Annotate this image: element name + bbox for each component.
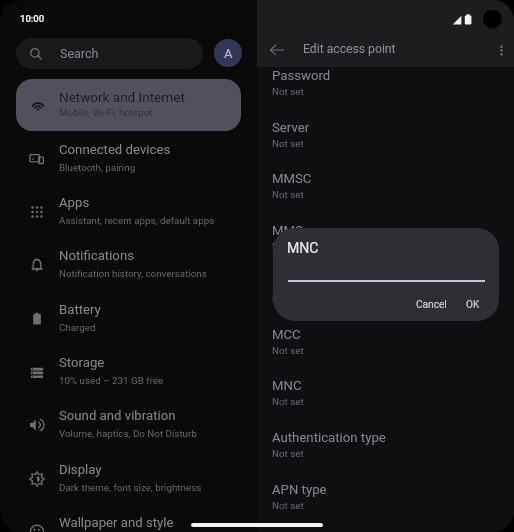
staticText: Not set (272, 345, 304, 356)
staticText: Volume, haptics, Do Not Disturb (59, 428, 197, 439)
button[interactable]: OK (459, 294, 487, 316)
staticText: Network and Internet (59, 89, 185, 105)
staticText: Not set (272, 241, 304, 252)
button[interactable]: APN type (257, 481, 514, 532)
button[interactable]: Search (16, 38, 203, 69)
button[interactable]: MMS port (257, 274, 514, 326)
button[interactable]: Storage (0, 345, 257, 398)
staticText: Charged (59, 322, 96, 333)
button[interactable]: Battery (0, 292, 257, 345)
staticText: 10% used – 231 GB free (59, 375, 164, 386)
staticText: OK (466, 299, 480, 311)
staticText: Not set (272, 189, 304, 200)
button[interactable]: Authentication type (257, 429, 514, 481)
staticText: MMS port (272, 275, 331, 290)
staticText: Dark theme, font size, brightness (59, 482, 202, 493)
button[interactable]: Sound and vibration (0, 398, 257, 451)
staticText: Notifications (59, 248, 134, 263)
staticText: MCC (272, 327, 301, 342)
button[interactable]: MMS proxy (257, 222, 514, 274)
button[interactable]: Account (214, 39, 242, 67)
staticText: Notification history, conversations (59, 268, 207, 279)
button[interactable]: MNC (257, 377, 514, 429)
staticText: Edit access point (303, 42, 396, 56)
button[interactable]: Display (0, 452, 257, 505)
button[interactable]: Notifications (0, 238, 257, 291)
button[interactable]: Connected devices (0, 132, 257, 185)
button[interactable]: Server (257, 119, 514, 171)
staticText: MMSC (272, 171, 312, 186)
button[interactable]: Apps (0, 185, 257, 238)
staticText: Cancel (416, 299, 447, 311)
staticText: Not set (272, 448, 304, 459)
staticText: Not set (272, 138, 304, 149)
staticText: Not set (272, 86, 304, 97)
button[interactable]: More options (481, 30, 514, 71)
staticText: MMS proxy (272, 223, 339, 238)
staticText: 10:00 (20, 13, 45, 24)
button[interactable]: Cancel (409, 294, 454, 316)
staticText: Connected devices (59, 142, 171, 157)
staticText: MNC (272, 378, 302, 393)
button[interactable]: Password (257, 67, 514, 119)
staticText: Not set (272, 293, 304, 304)
button[interactable]: Wallpaper and style (0, 505, 257, 532)
staticText: APN type (272, 482, 327, 497)
staticText: Storage (59, 355, 105, 370)
staticText: Display (59, 462, 102, 477)
staticText: A (224, 46, 233, 61)
button[interactable]: MCC (257, 326, 514, 378)
staticText: Mobile, Wi‑Fi, hotspot (59, 107, 153, 118)
staticText: Server (272, 120, 310, 135)
staticText: Not set (272, 396, 304, 407)
staticText: MNC (287, 240, 319, 257)
staticText: Wallpaper and style (59, 515, 174, 530)
button[interactable]: Network and Internet (16, 79, 241, 131)
staticText: Authentication type (272, 430, 386, 445)
staticText: Bluetooth, pairing (59, 162, 136, 173)
staticText: Battery (59, 302, 101, 317)
button[interactable]: Back (257, 30, 298, 71)
staticText: Apps (59, 195, 90, 210)
button[interactable]: MMSC (257, 170, 514, 222)
staticText: Search (60, 46, 99, 61)
staticText: Assistant, recent apps, default apps (59, 215, 215, 226)
staticText: Sound and vibration (59, 408, 176, 423)
staticText: Not set (272, 500, 304, 511)
staticText: Password (272, 68, 331, 83)
